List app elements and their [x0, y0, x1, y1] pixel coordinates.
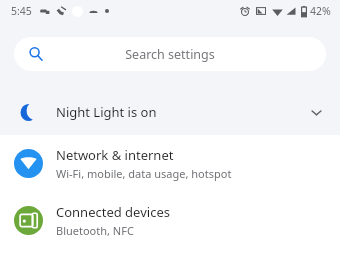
staticText: Connected devices: [56, 203, 170, 221]
button[interactable]: Network & internet: [0, 135, 340, 192]
staticText: 5:45: [11, 4, 32, 18]
other: Expand Night Light: [305, 101, 327, 123]
button[interactable]: Night Light is on: [0, 89, 340, 135]
button[interactable]: Search settings: [14, 37, 326, 71]
staticText: Night Light is on: [56, 103, 157, 121]
staticText: Bluetooth, NFC: [56, 223, 134, 238]
staticText: Search settings: [14, 46, 326, 63]
staticText: 42%: [310, 4, 331, 18]
staticText: Network & internet: [56, 146, 174, 164]
staticText: Wi-Fi, mobile, data usage, hotspot: [56, 166, 232, 181]
other: Search: [29, 47, 43, 61]
button[interactable]: Connected devices: [0, 192, 340, 249]
